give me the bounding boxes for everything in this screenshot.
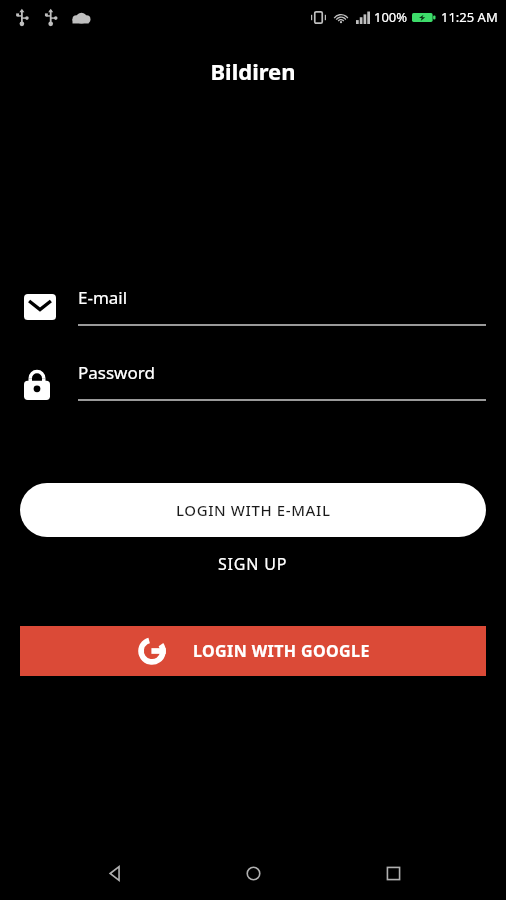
button[interactable]: Google	[20, 626, 486, 676]
staticText: 100%	[374, 8, 408, 26]
staticText: LOGIN WITH GOOGLE	[193, 640, 370, 662]
staticText: E-mail	[78, 286, 128, 309]
button[interactable]: Password	[0, 361, 506, 409]
button[interactable]: LOGIN WITH E-MAIL	[20, 483, 486, 537]
button[interactable]: SIGN UP	[202, 547, 304, 581]
staticText: Password	[78, 361, 155, 384]
staticText: SIGN UP	[218, 553, 288, 575]
button[interactable]: E-mail	[0, 286, 506, 334]
button[interactable]: Back	[88, 847, 140, 899]
staticText: 11:25 AM	[441, 8, 498, 26]
other: Google	[137, 636, 167, 666]
other: E-mail	[24, 294, 56, 320]
staticText: LOGIN WITH E-MAIL	[176, 500, 331, 520]
staticText: Bildiren	[0, 56, 506, 86]
button[interactable]: Recent apps	[367, 847, 419, 899]
button[interactable]: Home	[227, 847, 279, 899]
other: Password	[24, 369, 50, 400]
